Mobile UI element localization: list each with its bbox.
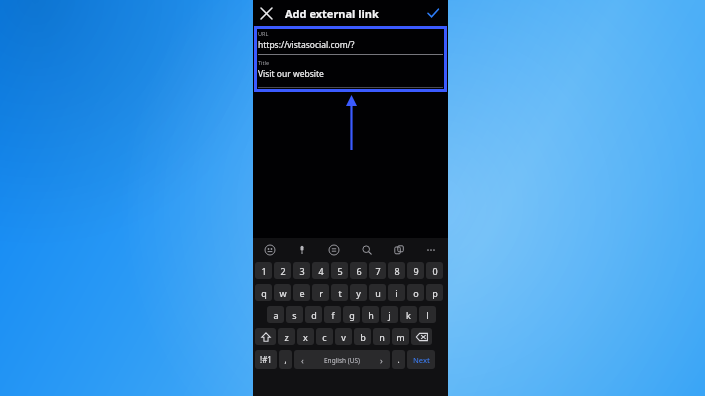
button[interactable]: Close — [253, 0, 279, 26]
button[interactable]: l — [419, 306, 436, 323]
button[interactable]: i — [388, 284, 405, 301]
button[interactable]: 2 — [274, 262, 291, 279]
staticText: w — [279, 287, 287, 299]
staticText: 5 — [337, 265, 343, 277]
staticText: v — [341, 331, 346, 343]
button[interactable]: Shift — [255, 328, 276, 345]
staticText: p — [432, 287, 438, 299]
staticText: l — [426, 309, 429, 321]
staticText: o — [413, 287, 419, 299]
staticText: b — [360, 331, 366, 343]
staticText: z — [284, 331, 289, 343]
staticText: u — [375, 287, 381, 299]
button[interactable]: w — [274, 284, 291, 301]
button[interactable]: Clipboard — [390, 241, 408, 259]
staticText: k — [406, 309, 411, 321]
button[interactable]: o — [407, 284, 424, 301]
button[interactable]: 3 — [293, 262, 310, 279]
staticText: s — [292, 309, 297, 321]
button[interactable]: , — [279, 350, 292, 369]
staticText: Visit our website — [258, 68, 324, 80]
button[interactable]: !#1 — [255, 350, 277, 369]
button[interactable]: g — [343, 306, 360, 323]
button[interactable]: z — [278, 328, 295, 345]
staticText: 8 — [394, 265, 400, 277]
staticText: English (US) — [324, 356, 361, 365]
staticText: URL — [258, 30, 269, 37]
button[interactable]: x — [297, 328, 314, 345]
button[interactable]: b — [354, 328, 371, 345]
button[interactable]: ‹ — [294, 350, 390, 369]
button[interactable]: p — [426, 284, 443, 301]
staticText: y — [356, 287, 361, 299]
button[interactable]: k — [400, 306, 417, 323]
button[interactable]: t — [331, 284, 348, 301]
button[interactable]: n — [373, 328, 390, 345]
button[interactable]: More options — [422, 241, 440, 259]
button[interactable]: d — [305, 306, 322, 323]
staticText: 4 — [318, 265, 324, 277]
button[interactable]: u — [369, 284, 386, 301]
button[interactable]: 1 — [255, 262, 272, 279]
button[interactable]: a — [267, 306, 284, 323]
button[interactable]: j — [381, 306, 398, 323]
button[interactable]: q — [255, 284, 272, 301]
staticText: Next — [413, 355, 430, 365]
staticText: e — [299, 287, 305, 299]
button[interactable]: m — [392, 328, 409, 345]
staticText: 1 — [261, 265, 267, 277]
button[interactable]: 5 — [331, 262, 348, 279]
staticText: !#1 — [260, 354, 272, 365]
staticText: 6 — [356, 265, 362, 277]
staticText: j — [388, 309, 391, 321]
button[interactable]: 0 — [426, 262, 443, 279]
button[interactable]: y — [350, 284, 367, 301]
staticText: 7 — [375, 265, 381, 277]
staticText: f — [331, 309, 335, 321]
button[interactable]: Settings — [325, 241, 343, 259]
button[interactable]: Search — [358, 241, 376, 259]
staticText: g — [349, 309, 355, 321]
button[interactable]: Backspace — [411, 328, 432, 345]
button[interactable]: 4 — [312, 262, 329, 279]
staticText: , — [284, 354, 287, 365]
staticText: https://vistasocial.com/?fpr=viktoriia11… — [258, 39, 443, 51]
staticText: r — [319, 287, 323, 299]
button[interactable]: s — [286, 306, 303, 323]
staticText: h — [368, 309, 374, 321]
button[interactable]: 9 — [407, 262, 424, 279]
button[interactable]: Voice input — [293, 241, 311, 259]
button[interactable]: Next — [407, 350, 435, 369]
staticText: . — [397, 354, 400, 365]
staticText: › — [380, 354, 383, 366]
staticText: c — [322, 331, 327, 343]
staticText: m — [396, 331, 405, 343]
button[interactable]: h — [362, 306, 379, 323]
staticText: t — [338, 287, 342, 299]
staticText: a — [273, 309, 279, 321]
staticText: 0 — [432, 265, 438, 277]
button[interactable]: 7 — [369, 262, 386, 279]
staticText: i — [395, 287, 398, 299]
staticText: ‹ — [301, 354, 304, 366]
button[interactable]: v — [335, 328, 352, 345]
button[interactable]: r — [312, 284, 329, 301]
staticText: 2 — [280, 265, 286, 277]
button[interactable]: Confirm — [420, 0, 446, 26]
staticText: n — [379, 331, 385, 343]
staticText: 3 — [299, 265, 305, 277]
button[interactable]: e — [293, 284, 310, 301]
staticText: Add external link — [285, 6, 379, 21]
button[interactable]: c — [316, 328, 333, 345]
button[interactable]: 8 — [388, 262, 405, 279]
button[interactable]: f — [324, 306, 341, 323]
staticText: q — [261, 287, 267, 299]
button[interactable]: Visit our website — [258, 68, 443, 80]
button[interactable]: 6 — [350, 262, 367, 279]
button[interactable]: Emoji — [261, 241, 279, 259]
staticText: x — [303, 331, 308, 343]
staticText: d — [311, 309, 317, 321]
staticText: 9 — [413, 265, 419, 277]
button[interactable]: . — [392, 350, 405, 369]
button[interactable]: https://vistasocial.com/?fpr=viktoriia11… — [258, 39, 443, 51]
